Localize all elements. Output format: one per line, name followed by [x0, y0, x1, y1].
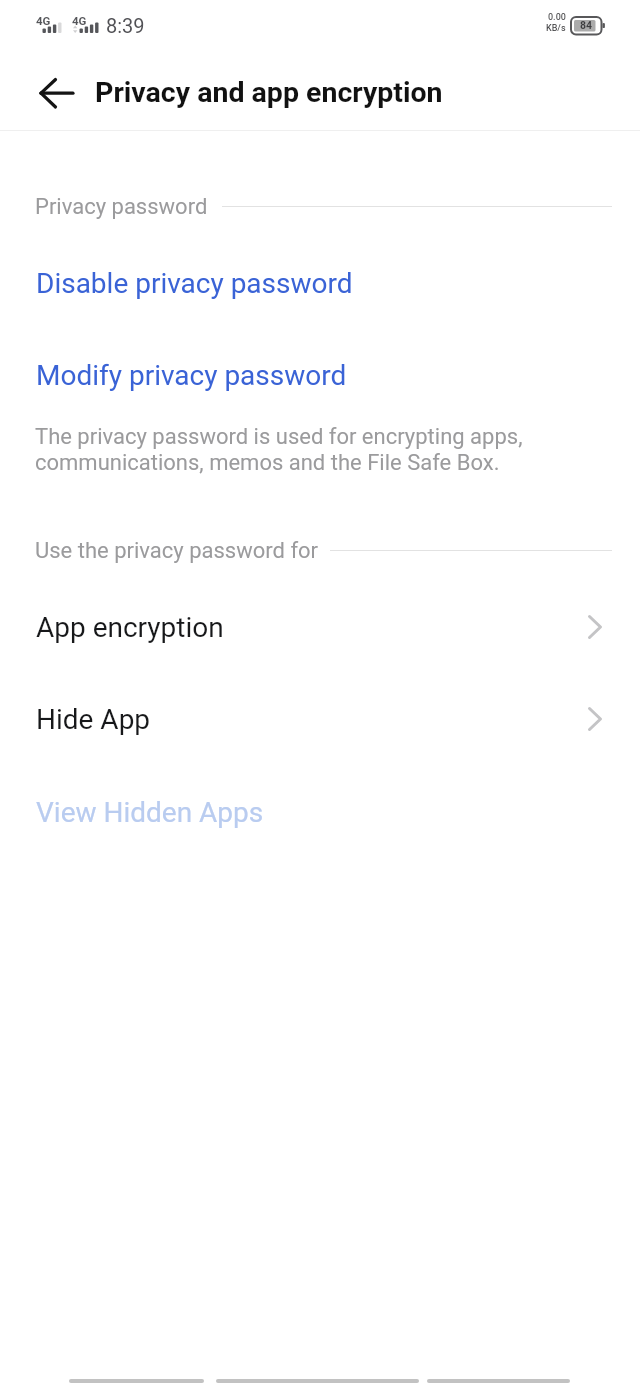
staticText: 0.00: [548, 12, 566, 23]
button[interactable]: [36, 74, 78, 114]
staticText: KB/s: [546, 23, 566, 34]
staticText: Privacy password: [35, 194, 208, 220]
staticText: Disable privacy password: [36, 267, 353, 300]
staticText: Hide App: [36, 703, 151, 736]
staticText: 4G: [36, 14, 51, 27]
staticText: Modify privacy password: [36, 359, 347, 392]
staticText: Privacy and app encryption: [95, 76, 443, 109]
button[interactable]: App encryption: [0, 587, 640, 667]
staticText: 4G: [72, 14, 87, 27]
staticText: 84: [580, 19, 593, 31]
button[interactable]: Disable privacy password: [0, 243, 640, 323]
button[interactable]: Modify privacy password: [0, 335, 640, 415]
staticText: 8:39: [106, 14, 145, 37]
staticText: The privacy password is used for encrypt…: [35, 424, 523, 475]
staticText: View Hidden Apps: [36, 796, 264, 829]
button[interactable]: Hide App: [0, 679, 640, 759]
staticText: App encryption: [36, 611, 224, 644]
button[interactable]: View Hidden Apps: [0, 772, 640, 852]
staticText: Use the privacy password for: [35, 538, 319, 564]
